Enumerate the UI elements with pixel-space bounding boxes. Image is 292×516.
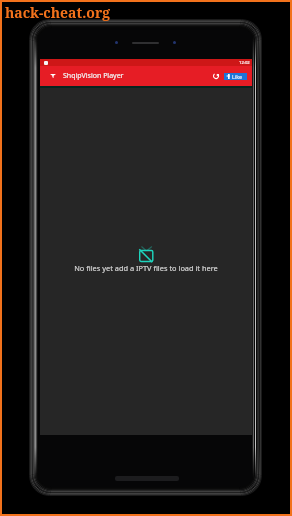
staticText: 12:02 [239,60,250,66]
staticText: No files yet add a IPTV files to load it… [74,263,218,273]
button[interactable]: Like [224,73,247,80]
button[interactable]: Filter [43,66,62,85]
staticText: Like [232,73,243,80]
staticText: hack-cheat.org [5,3,111,22]
staticText: ShqipVision Player [63,71,124,81]
button[interactable]: Refresh [207,67,225,85]
